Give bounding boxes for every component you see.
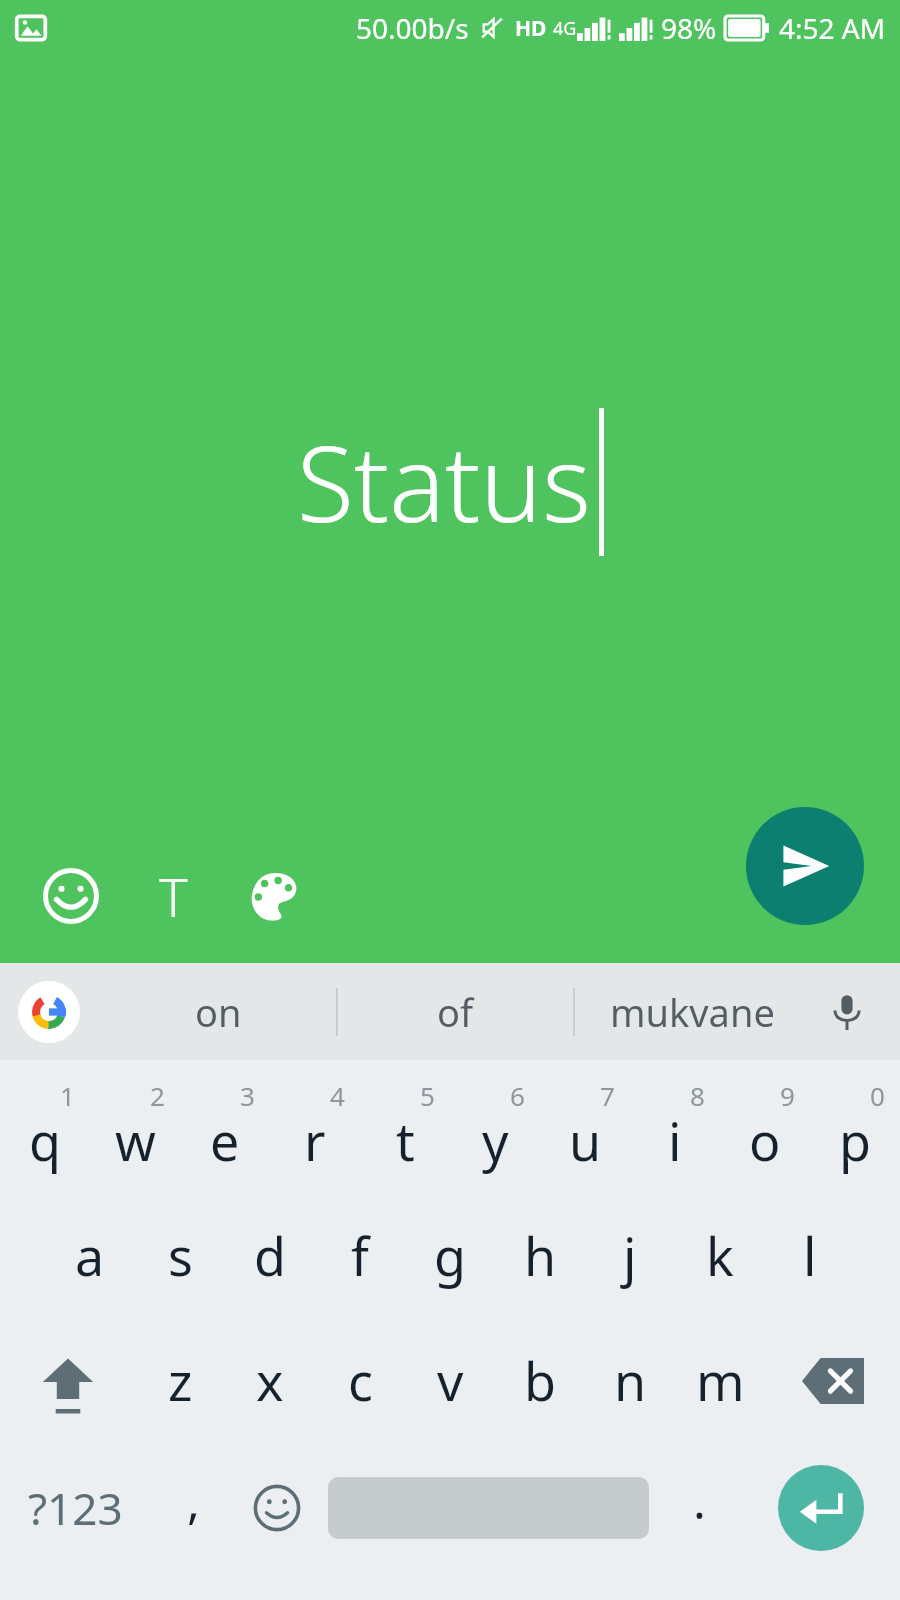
staticText: , xyxy=(187,1468,200,1533)
staticText: w xyxy=(115,1105,156,1176)
button[interactable]: x xyxy=(225,1318,315,1443)
staticText: Status xyxy=(297,411,591,553)
staticText: 4:52 AM xyxy=(779,9,886,47)
button[interactable]: Space xyxy=(319,1443,657,1573)
staticText: T xyxy=(159,859,188,933)
button[interactable]: 0 xyxy=(810,1068,900,1193)
button[interactable]: 8 xyxy=(630,1068,720,1193)
button[interactable]: , xyxy=(151,1443,235,1573)
staticText: 50.00b/s xyxy=(356,9,469,47)
button[interactable]: Draw xyxy=(238,859,312,933)
staticText: b xyxy=(524,1345,556,1416)
staticText: d xyxy=(254,1220,286,1291)
staticText: n xyxy=(614,1345,647,1416)
staticText: . xyxy=(693,1468,706,1533)
staticText: v xyxy=(437,1345,464,1416)
button[interactable]: Google xyxy=(18,981,80,1043)
staticText: 3 xyxy=(240,1078,255,1113)
other: Image xyxy=(14,11,48,45)
button[interactable]: k xyxy=(675,1193,765,1318)
button[interactable]: on xyxy=(100,963,336,1060)
button[interactable]: 7 xyxy=(540,1068,630,1193)
button[interactable]: ?123 xyxy=(0,1443,151,1573)
button[interactable]: of xyxy=(338,963,573,1060)
staticText: 2 xyxy=(150,1078,165,1113)
button[interactable]: Emoji xyxy=(34,859,108,933)
button[interactable]: 2 xyxy=(90,1068,180,1193)
staticText: 7 xyxy=(600,1078,615,1113)
button[interactable]: d xyxy=(225,1193,315,1318)
button[interactable]: 1 xyxy=(0,1068,90,1193)
staticText: f xyxy=(351,1220,369,1291)
staticText: h xyxy=(524,1220,557,1291)
button[interactable]: m xyxy=(675,1318,765,1443)
staticText: u xyxy=(569,1105,602,1176)
staticText: i xyxy=(668,1105,682,1176)
button[interactable]: h xyxy=(495,1193,585,1318)
button[interactable]: Backspace xyxy=(765,1318,900,1443)
staticText: s xyxy=(168,1220,193,1291)
staticText: HD xyxy=(515,14,547,43)
staticText: q xyxy=(29,1105,61,1176)
button[interactable]: l xyxy=(765,1193,855,1318)
staticText: of xyxy=(437,986,474,1038)
button[interactable]: . xyxy=(657,1443,741,1573)
staticText: 4G xyxy=(553,16,577,41)
button[interactable]: Emoji xyxy=(235,1443,319,1573)
staticText: e xyxy=(210,1105,240,1176)
button[interactable]: Enter xyxy=(778,1465,864,1551)
button[interactable]: 9 xyxy=(720,1068,810,1193)
staticText: o xyxy=(749,1105,781,1176)
staticText: 0 xyxy=(870,1078,885,1113)
button[interactable]: n xyxy=(585,1318,675,1443)
staticText: z xyxy=(168,1345,193,1416)
button[interactable]: Shift xyxy=(0,1318,135,1443)
staticText: on xyxy=(195,986,242,1038)
staticText: l xyxy=(803,1220,817,1291)
staticText: x xyxy=(256,1345,284,1416)
button[interactable]: g xyxy=(405,1193,495,1318)
staticText: 98% xyxy=(661,9,717,47)
button[interactable]: 4 xyxy=(270,1068,360,1193)
button[interactable]: j xyxy=(585,1193,675,1318)
staticText: 1 xyxy=(60,1078,75,1113)
staticText: y xyxy=(482,1105,509,1176)
button[interactable]: Text xyxy=(136,859,210,933)
staticText: 9 xyxy=(780,1078,795,1113)
staticText: 8 xyxy=(690,1078,705,1113)
staticText: ?123 xyxy=(28,1478,123,1538)
button[interactable]: v xyxy=(405,1318,495,1443)
staticText: mukvane xyxy=(610,986,775,1038)
staticText: k xyxy=(706,1220,734,1291)
button[interactable]: b xyxy=(495,1318,585,1443)
staticText: j xyxy=(623,1220,637,1291)
staticText: 4 xyxy=(330,1078,345,1113)
button[interactable]: 3 xyxy=(180,1068,270,1193)
staticText: t xyxy=(396,1105,415,1176)
button[interactable]: f xyxy=(315,1193,405,1318)
button[interactable]: Voice input xyxy=(816,981,878,1043)
staticText: c xyxy=(348,1345,373,1416)
staticText: a xyxy=(75,1220,105,1291)
staticText: 5 xyxy=(420,1078,435,1113)
staticText: r xyxy=(304,1105,326,1176)
button[interactable]: a xyxy=(45,1193,135,1318)
staticText: m xyxy=(696,1345,745,1416)
staticText: p xyxy=(839,1105,871,1176)
button[interactable]: Send xyxy=(746,807,864,925)
button[interactable]: c xyxy=(315,1318,405,1443)
button[interactable]: mukvane xyxy=(575,963,810,1060)
button[interactable]: z xyxy=(135,1318,225,1443)
button[interactable]: 5 xyxy=(360,1068,450,1193)
staticText: 6 xyxy=(510,1078,525,1113)
button[interactable]: 6 xyxy=(450,1068,540,1193)
button[interactable]: s xyxy=(135,1193,225,1318)
staticText: g xyxy=(434,1220,466,1291)
